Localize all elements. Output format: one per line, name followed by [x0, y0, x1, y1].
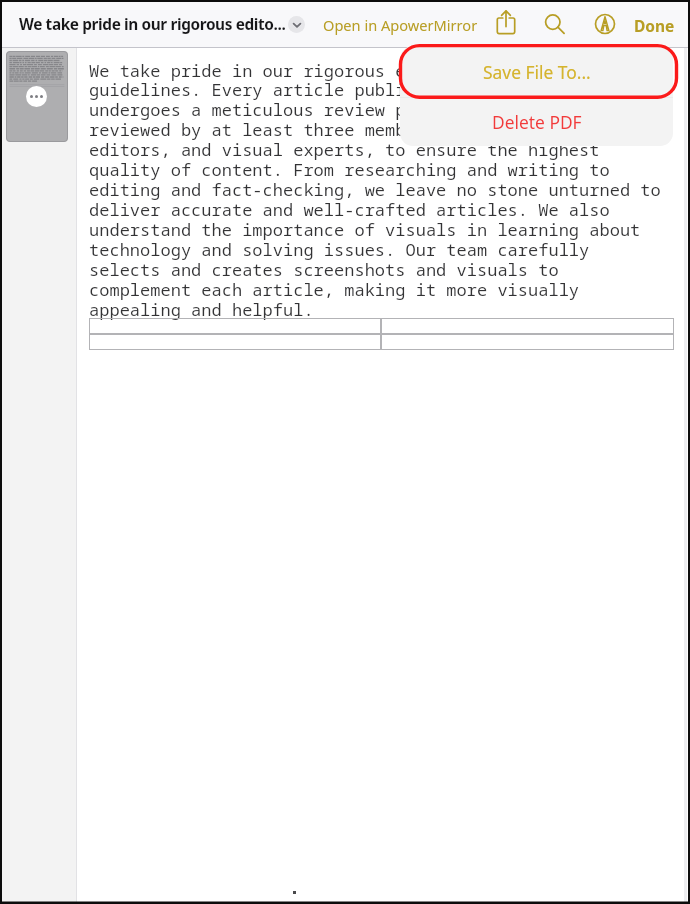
button[interactable]: Search [538, 8, 570, 40]
button[interactable]: We take pride in our rigorous edito... [19, 14, 286, 35]
button[interactable]: Save File To... [400, 46, 673, 97]
button[interactable]: Markup [589, 8, 621, 40]
button[interactable]: Page 1 thumbnail [6, 51, 68, 142]
staticText: We take pride in our rigorous edito... [19, 14, 286, 35]
staticText: Open in ApowerMirror [323, 15, 478, 35]
staticText: Done [634, 15, 675, 36]
button[interactable]: Done [631, 12, 678, 39]
button[interactable]: Show options [288, 16, 305, 33]
button[interactable]: Open in ApowerMirror [320, 12, 481, 38]
staticText: We take pride in our rigorous editorial … [89, 59, 661, 321]
staticText: Delete PDF [492, 110, 582, 134]
staticText: Save File To... [483, 60, 591, 84]
button[interactable]: Delete PDF [400, 98, 673, 146]
button[interactable]: Share [490, 8, 522, 40]
